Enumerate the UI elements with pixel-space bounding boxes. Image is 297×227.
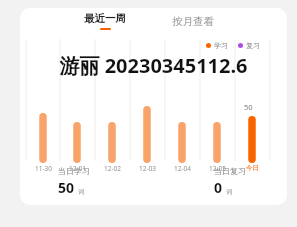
staticText: 最近一周	[84, 12, 126, 25]
staticText: 50	[58, 178, 75, 197]
staticText: 50	[244, 102, 253, 112]
staticText: 学习	[214, 41, 228, 50]
button[interactable]: 按月查看	[160, 8, 226, 34]
staticText: 0	[214, 178, 223, 197]
staticText: 12-04	[174, 164, 191, 173]
staticText: 12-03	[139, 164, 156, 173]
staticText: 12-01	[69, 164, 86, 173]
staticText: 词	[226, 188, 233, 196]
staticText: 词	[78, 188, 85, 196]
staticText: 游丽 20230345112.6	[59, 52, 248, 79]
button[interactable]: 最近一周	[72, 8, 138, 34]
button[interactable]: 当日学习	[58, 166, 138, 197]
staticText: 12-02	[104, 164, 121, 173]
staticText: 复习	[246, 41, 260, 50]
staticText: 12-05	[209, 164, 226, 173]
button[interactable]: 当日复习	[214, 166, 287, 197]
staticText: 当日复习	[214, 166, 246, 176]
staticText: 11-30	[35, 164, 52, 173]
staticText: 当日学习	[58, 166, 90, 176]
staticText: 今日	[246, 164, 259, 172]
staticText: 按月查看	[172, 15, 214, 28]
